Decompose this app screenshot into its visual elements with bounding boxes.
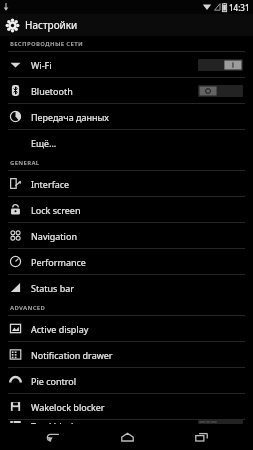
button[interactable]: Wi-Fi bbox=[0, 52, 253, 77]
button[interactable]: Notification drawer bbox=[0, 342, 253, 367]
button[interactable]: Lock screen bbox=[0, 197, 253, 222]
button[interactable]: Home bbox=[104, 424, 150, 450]
staticText: Ещё... bbox=[31, 137, 57, 149]
button[interactable]: Performance bbox=[0, 249, 253, 274]
button[interactable]: Navigation bbox=[0, 223, 253, 248]
button[interactable]: Active display bbox=[0, 316, 253, 341]
button[interactable]: Status bar bbox=[0, 275, 253, 300]
staticText: Передача данных bbox=[31, 111, 109, 123]
staticText: Pie control bbox=[31, 375, 77, 387]
staticText: Total blackout bbox=[31, 420, 91, 424]
staticText: БЕСПРОВОДНЫЕ СЕТИ bbox=[10, 40, 83, 48]
button[interactable]: Ещё... bbox=[0, 130, 253, 155]
staticText: ADVANCED bbox=[10, 304, 46, 312]
button[interactable]: Back bbox=[29, 424, 75, 450]
staticText: Notification drawer bbox=[31, 349, 113, 361]
staticText: Bluetooth bbox=[31, 85, 73, 97]
staticText: GENERAL bbox=[10, 159, 40, 167]
button[interactable]: Bluetooth bbox=[0, 78, 253, 103]
staticText: Wi-Fi bbox=[31, 59, 52, 71]
staticText: Performance bbox=[31, 256, 86, 268]
staticText: Navigation bbox=[31, 230, 77, 242]
staticText: Lock screen bbox=[31, 204, 81, 216]
button[interactable]: Total blackout bbox=[0, 420, 253, 424]
staticText: 14:31 bbox=[229, 2, 250, 13]
button[interactable] bbox=[198, 420, 243, 424]
button[interactable] bbox=[198, 59, 243, 71]
staticText: Настройки bbox=[25, 18, 78, 32]
button[interactable]: Recent apps bbox=[178, 424, 224, 450]
staticText: Wakelock blocker bbox=[31, 401, 105, 413]
staticText: Interface bbox=[31, 178, 70, 190]
button[interactable]: Pie control bbox=[0, 368, 253, 393]
button[interactable]: Interface bbox=[0, 171, 253, 196]
staticText: Status bar bbox=[31, 282, 75, 294]
staticText: Active display bbox=[31, 323, 89, 335]
button[interactable] bbox=[198, 85, 243, 97]
button[interactable]: Передача данных bbox=[0, 104, 253, 129]
button[interactable]: Wakelock blocker bbox=[0, 394, 253, 419]
